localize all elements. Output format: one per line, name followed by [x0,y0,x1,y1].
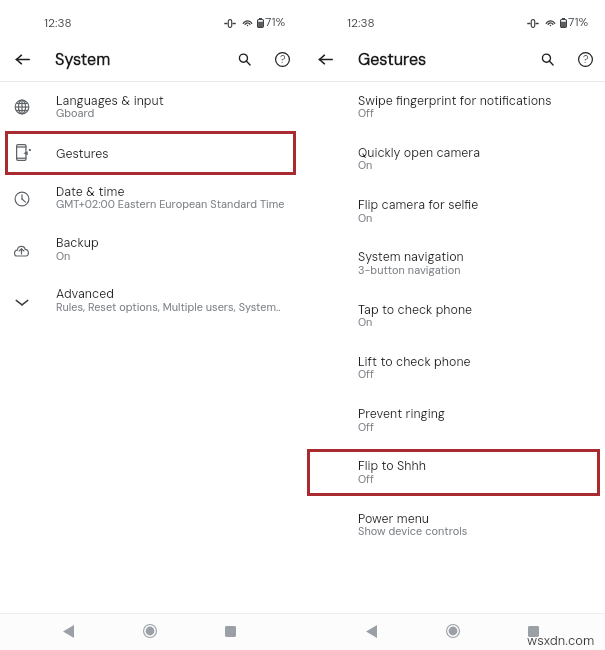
button[interactable] [303,396,605,448]
staticText: System [55,49,111,70]
button[interactable]: Back [355,615,387,647]
button[interactable] [0,173,303,224]
button[interactable]: Recent apps [517,615,549,647]
staticText: GMT+02:00 Eastern European Standard Time [56,197,285,211]
staticText: Quickly open camera [358,145,480,161]
staticText: Off [358,472,374,486]
staticText: 71% [265,14,286,29]
button[interactable] [0,132,303,173]
staticText: 12:38 [44,15,72,30]
staticText: Off [358,420,374,434]
staticText: Tap to check phone [358,302,473,318]
button[interactable] [303,240,605,292]
button[interactable] [0,224,303,275]
button[interactable] [303,135,605,187]
staticText: Prevent ringing [358,406,445,422]
staticText: Advanced [56,286,114,302]
staticText: Rules, Reset options, Multiple users, Sy… [56,300,281,314]
button[interactable]: Home [134,615,166,647]
button[interactable]: Navigate up [6,43,38,75]
button[interactable]: Navigate up [309,43,341,75]
staticText: 3-button navigation [358,263,461,277]
staticText: Languages & input [56,93,164,109]
staticText: ? [583,53,589,66]
staticText: Flip to Shhh [358,458,426,474]
staticText: Off [358,106,374,120]
staticText: Lift to check phone [358,354,471,370]
staticText: Gestures [358,49,427,70]
button[interactable] [303,501,605,553]
button[interactable] [0,82,303,132]
button[interactable]: Help [569,43,601,75]
staticText: Date & time [56,184,125,200]
button[interactable]: Recent apps [214,615,246,647]
button[interactable] [303,449,605,501]
staticText: On [56,249,71,263]
staticText: On [358,211,373,225]
staticText: Backup [56,235,99,251]
staticText: Power menu [358,511,429,527]
staticText: System navigation [358,249,464,265]
staticText: Gestures [56,146,109,162]
button[interactable] [303,344,605,396]
button[interactable] [303,187,605,239]
button[interactable]: Help [266,43,298,75]
staticText: On [358,158,373,172]
button[interactable] [0,275,303,326]
staticText: 71% [568,14,589,29]
staticText: wsxdn.com [527,632,595,649]
button[interactable] [303,83,605,135]
button[interactable]: Search [531,43,563,75]
button[interactable]: Home [437,615,469,647]
staticText: Flip camera for selfie [358,197,479,213]
staticText: Swipe fingerprint for notifications [358,93,552,109]
staticText: Off [358,367,374,381]
staticText: Show device controls [358,524,468,538]
staticText: ? [280,53,286,66]
staticText: Gboard [56,106,95,120]
staticText: 12:38 [347,15,375,30]
button[interactable]: Search [228,43,260,75]
button[interactable]: Back [52,615,84,647]
button[interactable] [303,292,605,344]
staticText: On [358,315,373,329]
